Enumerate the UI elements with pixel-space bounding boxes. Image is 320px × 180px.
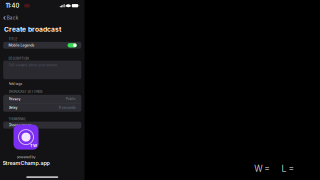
staticText: DESCRIPTION [9, 57, 29, 60]
button[interactable]: Back [0, 15, 84, 20]
staticText: Back [7, 15, 18, 21]
staticText: Public [66, 97, 76, 101]
staticText: Add tags [9, 82, 23, 86]
button[interactable]: Add tags [9, 82, 23, 86]
staticText: Delay [9, 106, 18, 110]
staticText: W = [254, 164, 270, 174]
button[interactable]: Privacy [3, 95, 81, 103]
staticText: Create broadcast [4, 25, 61, 33]
staticText: TITLE [9, 37, 18, 41]
staticText: THUMBNAIL [9, 117, 27, 121]
staticText: powered by [16, 155, 35, 159]
button[interactable]: Choose image [3, 122, 81, 129]
staticText: 11:40 [6, 2, 20, 9]
staticText: StreamChamp.app [2, 160, 49, 166]
staticText: BROADCAST SETTINGS [9, 90, 43, 93]
staticText: 0 seconds [59, 106, 76, 109]
staticText: L = [281, 164, 294, 174]
button[interactable]: Mobile Legends [3, 42, 81, 49]
staticText: Privacy [9, 97, 21, 101]
staticText: TW [30, 143, 37, 148]
button[interactable]: Delay [3, 103, 81, 112]
staticText: Tell viewers about your stream [9, 63, 58, 67]
staticText: Mobile Legends [9, 43, 35, 47]
button[interactable]: Tell viewers about your stream [3, 61, 81, 79]
staticText: Choose image [9, 123, 32, 127]
